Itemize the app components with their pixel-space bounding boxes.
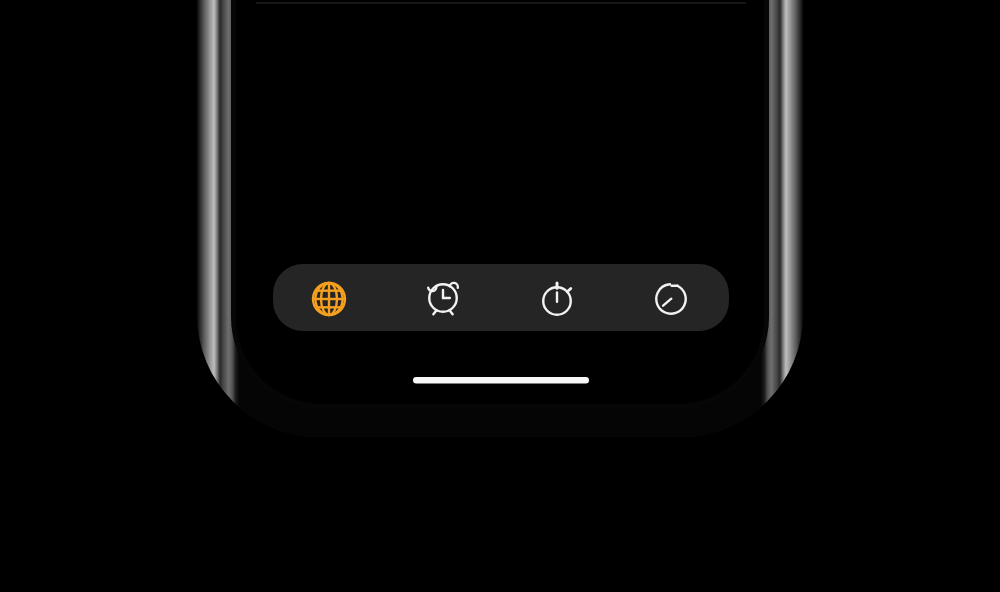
button[interactable]: Stopwatch [500, 264, 614, 331]
button[interactable]: Timer [614, 264, 728, 331]
button[interactable]: World Clock [272, 264, 386, 331]
button[interactable]: Alarm [386, 264, 500, 331]
